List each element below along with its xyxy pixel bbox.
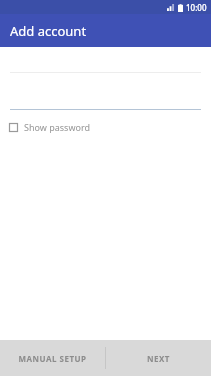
- staticText: Add account: [10, 22, 87, 40]
- staticText: 10:00: [186, 2, 207, 13]
- button[interactable]: [0, 73, 211, 110]
- button[interactable]: Show password: [0, 118, 211, 136]
- staticText: MANUAL SETUP: [18, 353, 87, 364]
- staticText: NEXT: [147, 353, 170, 364]
- button[interactable]: NEXT: [106, 340, 211, 376]
- button[interactable]: [0, 47, 211, 73]
- staticText: Show password: [24, 121, 90, 133]
- button[interactable]: MANUAL SETUP: [0, 340, 105, 376]
